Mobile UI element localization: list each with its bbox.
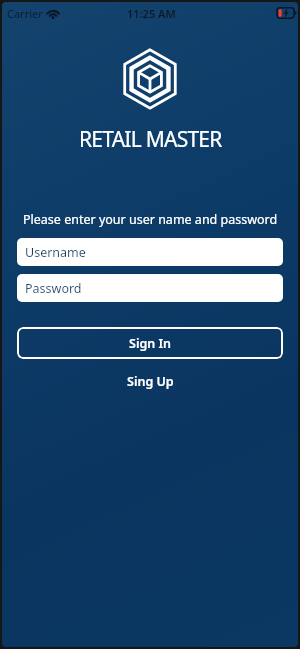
button[interactable]: Username	[17, 238, 283, 266]
staticText: Sign In	[129, 335, 172, 352]
staticText: Please enter your user name and password	[23, 211, 278, 228]
staticText: Username	[25, 244, 86, 261]
button[interactable]: Sign In	[17, 327, 283, 359]
staticText: Password	[25, 280, 82, 297]
button[interactable]: Password	[17, 274, 283, 302]
staticText: Carrier	[7, 6, 43, 21]
staticText: RETAIL MASTER	[79, 125, 222, 154]
staticText: Sing Up	[127, 373, 174, 390]
button[interactable]: Sing Up	[127, 367, 174, 395]
staticText: 11:25 AM	[127, 6, 176, 21]
